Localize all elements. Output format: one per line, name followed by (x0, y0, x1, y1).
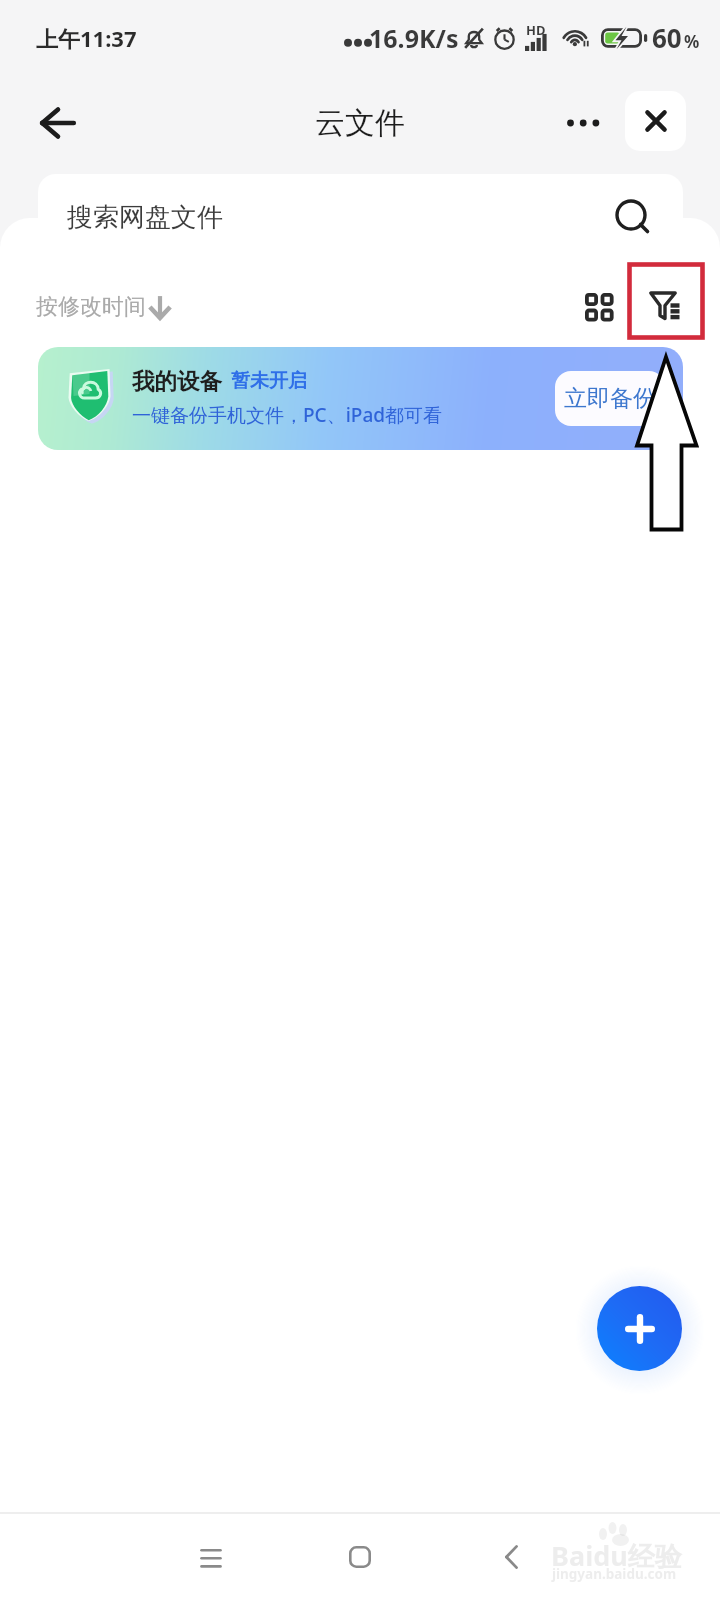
button[interactable]: 按修改时间 (36, 293, 171, 321)
staticText: Baidu经验 (551, 1537, 682, 1574)
staticText: HD (526, 21, 546, 39)
staticText: 搜索网盘文件 (67, 201, 223, 234)
staticText: 一键备份手机文件，PC、iPad都可看 (132, 402, 443, 428)
staticText: 我的设备 (132, 367, 222, 395)
button[interactable]: Recents (180, 1526, 242, 1588)
button[interactable]: Back (480, 1526, 542, 1588)
button[interactable]: 我的设备 (38, 347, 683, 450)
button[interactable]: Close (625, 91, 686, 151)
staticText: 云文件 (315, 104, 405, 142)
button[interactable]: Grid view (570, 278, 628, 336)
staticText: 按修改时间 (36, 293, 146, 321)
button[interactable]: Home (329, 1526, 391, 1588)
staticText: 16.9K/s (369, 21, 459, 55)
button[interactable]: Add (597, 1286, 682, 1371)
button[interactable]: 立即备份 (555, 371, 665, 426)
staticText: jingyan.baidu.com (552, 1565, 677, 1583)
staticText: % (684, 30, 700, 53)
button[interactable]: 搜索网盘文件 (38, 174, 683, 257)
button[interactable]: Back (22, 87, 94, 159)
button[interactable]: Filter (637, 278, 695, 336)
staticText: 60 (652, 20, 682, 55)
staticText: 暂未开启 (231, 369, 307, 393)
staticText: 立即备份 (564, 384, 656, 413)
staticText: 上午11:37 (36, 23, 137, 53)
button[interactable]: More options (552, 92, 614, 154)
